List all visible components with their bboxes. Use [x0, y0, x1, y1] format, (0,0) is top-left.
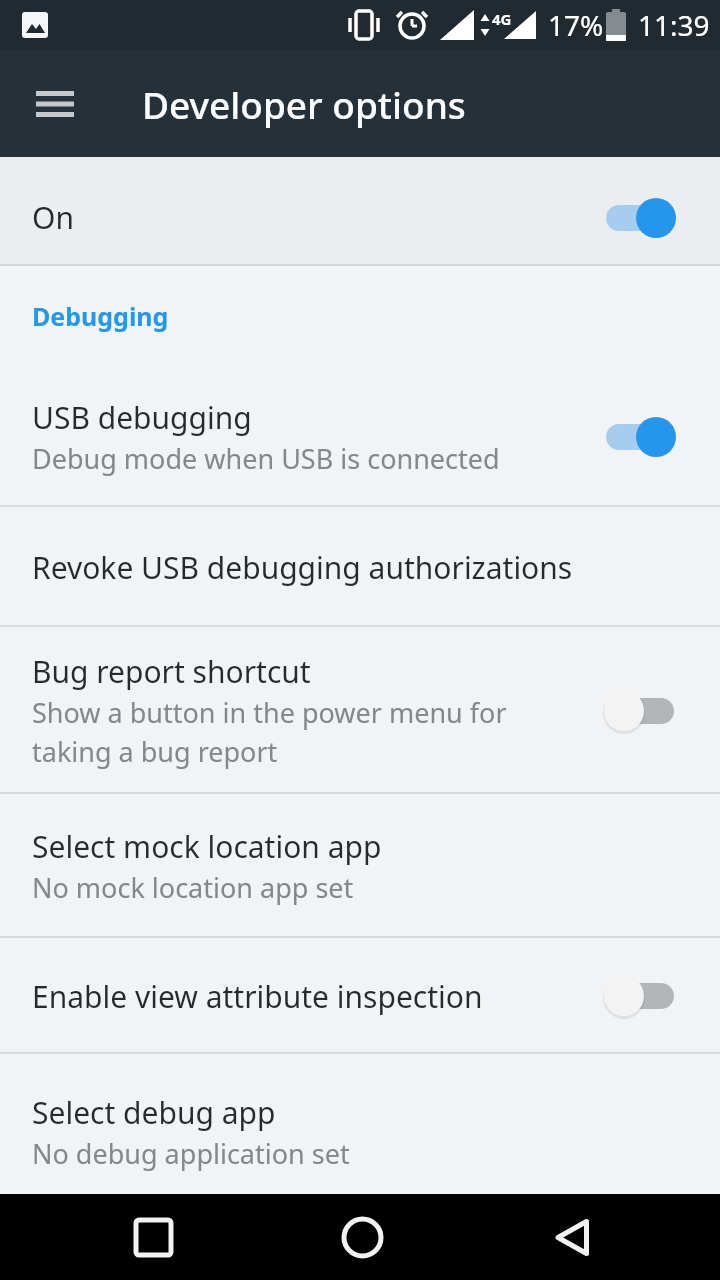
staticText: Debugging	[32, 299, 169, 333]
button[interactable]: Enable view attribute inspection	[0, 938, 720, 1054]
staticText: On	[32, 197, 604, 238]
staticText: No debug application set	[32, 1135, 350, 1172]
button[interactable]: Select debug app	[0, 1054, 720, 1194]
staticText: taking a bug report	[32, 733, 278, 770]
staticText: 17%	[548, 6, 604, 44]
button[interactable]: Select mock location app	[0, 794, 720, 938]
button[interactable]	[532, 1197, 612, 1277]
staticText: Select mock location app	[32, 826, 382, 867]
staticText: 11:39	[638, 6, 710, 44]
staticText: No mock location app set	[32, 869, 354, 906]
button[interactable]: On	[0, 157, 720, 266]
button[interactable]	[322, 1197, 402, 1277]
button[interactable]: Revoke USB debugging authorizations	[0, 507, 720, 627]
staticText: Bug report shortcut	[32, 651, 311, 692]
button[interactable]: Bug report shortcut	[0, 627, 720, 794]
staticText: Select debug app	[32, 1092, 276, 1133]
staticText: Debug mode when USB is connected	[32, 440, 500, 477]
staticText: USB debugging	[32, 397, 252, 438]
staticText: Revoke USB debugging authorizations	[32, 547, 573, 588]
button[interactable]	[20, 69, 90, 139]
staticText: Show a button in the power menu for	[32, 694, 507, 731]
button[interactable]: USB debugging	[0, 366, 720, 507]
staticText: Developer options	[142, 79, 466, 129]
staticText: 4G	[492, 9, 512, 29]
staticText: Enable view attribute inspection	[32, 976, 483, 1017]
button[interactable]	[113, 1197, 193, 1277]
